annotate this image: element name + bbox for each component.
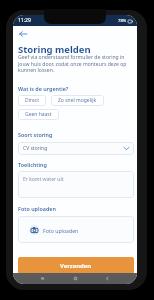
button[interactable]: Foto uploaden xyxy=(18,216,134,243)
staticText: Verzenden xyxy=(60,262,92,270)
other: Back xyxy=(105,276,110,281)
staticText: 11:29 xyxy=(18,17,31,24)
other: Home xyxy=(73,276,78,281)
button[interactable]: CV storing xyxy=(18,142,134,155)
staticText: Foto uploaden xyxy=(18,205,56,212)
other: Recent apps xyxy=(40,276,45,281)
button[interactable]: Direct xyxy=(18,95,46,106)
button[interactable]: Back xyxy=(16,28,30,40)
button[interactable]: Verzenden xyxy=(18,257,134,274)
staticText: Direct xyxy=(25,97,39,104)
button[interactable]: Zo snel mogelijk xyxy=(51,95,104,106)
staticText: Zo snel mogelijk xyxy=(58,97,97,104)
button[interactable]: Er komt water uit xyxy=(18,171,134,198)
staticText: Geen haast xyxy=(25,111,52,118)
staticText: Storing melden xyxy=(18,43,91,56)
staticText: Soort storing xyxy=(18,131,53,138)
staticText: Er komt water uit xyxy=(23,176,64,183)
staticText: Toelichting xyxy=(18,161,47,168)
staticText: 78% xyxy=(118,18,127,24)
staticText: Foto uploaden xyxy=(43,227,79,234)
staticText: Geef via onderstaand formulier de storin… xyxy=(18,54,127,73)
button[interactable]: Geen haast xyxy=(18,109,59,120)
staticText: CV storing xyxy=(23,145,48,152)
staticText: Wat is de urgentie? xyxy=(18,85,69,92)
